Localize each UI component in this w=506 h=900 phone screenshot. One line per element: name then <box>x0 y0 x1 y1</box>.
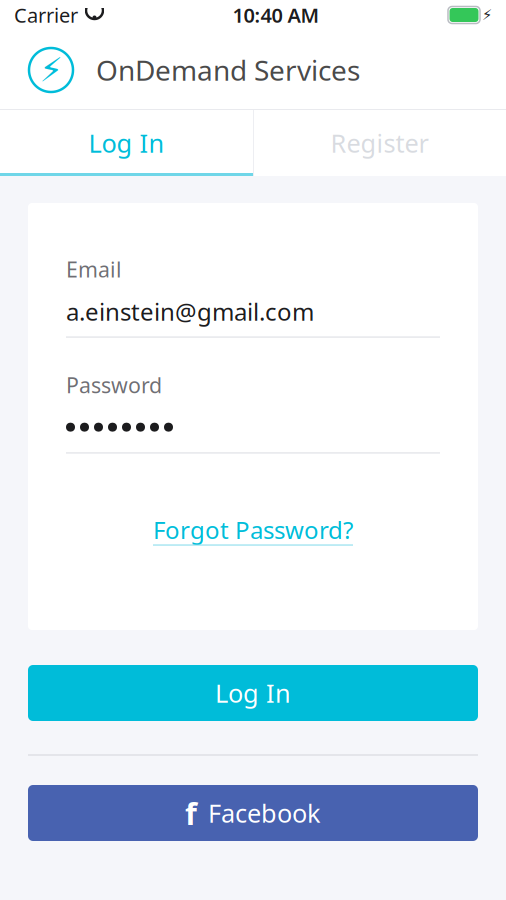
staticText: Log In <box>215 676 291 710</box>
button[interactable]: Log In <box>0 110 253 176</box>
button[interactable]: Log In <box>28 665 478 721</box>
staticText: Email <box>66 255 122 283</box>
staticText: Password <box>66 371 162 399</box>
staticText: f <box>185 793 197 833</box>
staticText: ⚡︎ <box>39 51 62 89</box>
staticText: Forgot Password? <box>153 514 353 546</box>
staticText: a.einstein@gmail.com <box>66 295 314 327</box>
button[interactable]: Forgot Password? <box>153 514 353 546</box>
button[interactable]: Register <box>253 110 506 176</box>
staticText: OnDemand Services <box>96 51 360 89</box>
staticText: Facebook <box>208 796 321 830</box>
button[interactable]: f <box>28 785 478 841</box>
staticText: Carrier <box>14 2 78 28</box>
staticText: Log In <box>88 126 164 160</box>
staticText: 10:40 AM <box>232 2 319 28</box>
staticText: Register <box>330 126 428 160</box>
staticText: ⚡︎ <box>482 7 492 23</box>
